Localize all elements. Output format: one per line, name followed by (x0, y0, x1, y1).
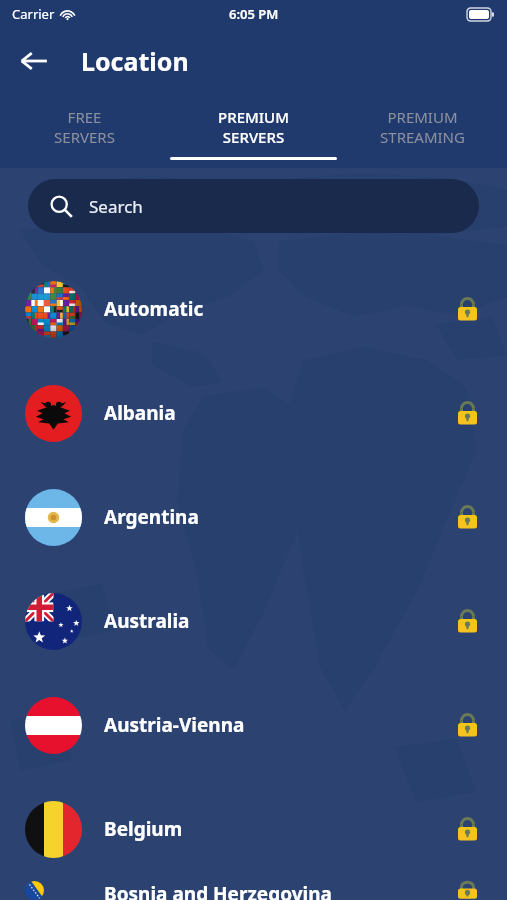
button[interactable]: Belgium (0, 777, 507, 881)
button[interactable]: Premium locked (449, 811, 485, 847)
staticText: Belgium (104, 816, 183, 842)
staticText: PREMIUM STREAMING (380, 107, 465, 147)
staticText: Bosnia and Herzegovina (104, 881, 332, 900)
button[interactable]: Australia (0, 569, 507, 673)
button[interactable]: Search (28, 179, 479, 233)
button[interactable]: Premium locked (449, 603, 485, 639)
button[interactable]: PREMIUM SERVERS (169, 94, 338, 168)
button[interactable]: Premium locked (449, 395, 485, 431)
button[interactable]: Premium locked (449, 499, 485, 535)
staticText: Austria-Vienna (104, 712, 245, 738)
button[interactable]: FREE SERVERS (0, 94, 169, 168)
button[interactable]: PREMIUM STREAMING (338, 94, 507, 168)
staticText: Carrier (12, 5, 55, 23)
staticText: PREMIUM SERVERS (218, 107, 289, 147)
staticText: Argentina (104, 504, 199, 530)
button[interactable]: Automatic (0, 257, 507, 361)
staticText: Location (81, 44, 189, 78)
button[interactable]: Premium locked (449, 291, 485, 327)
button[interactable]: Albania (0, 361, 507, 465)
button[interactable]: Back (9, 36, 59, 86)
staticText: Australia (104, 608, 190, 634)
button[interactable]: Bosnia and Herzegovina (0, 881, 507, 900)
staticText: Search (89, 195, 143, 218)
button[interactable]: Argentina (0, 465, 507, 569)
button[interactable]: Premium locked (449, 707, 485, 743)
staticText: 6:05 PM (229, 5, 279, 23)
button[interactable]: Austria-Vienna (0, 673, 507, 777)
other: Search (50, 195, 73, 218)
staticText: FREE SERVERS (54, 107, 115, 147)
button[interactable]: Premium locked (449, 881, 485, 900)
staticText: Automatic (104, 296, 204, 322)
staticText: Albania (104, 400, 176, 426)
